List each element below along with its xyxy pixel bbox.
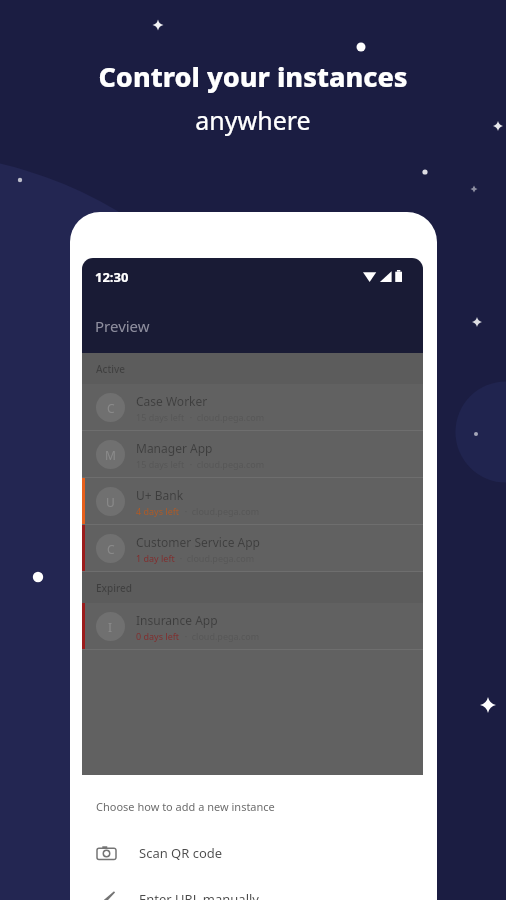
staticText: Manager App: [136, 440, 213, 456]
button[interactable]: C: [82, 525, 423, 572]
staticText: Customer Service App: [136, 534, 260, 550]
staticText: I: [108, 619, 113, 635]
other: Scan QR code: [97, 844, 116, 863]
staticText: U+ Bank: [136, 487, 184, 503]
button[interactable]: I: [82, 603, 423, 650]
staticText: C: [107, 541, 115, 557]
button[interactable]: Scan QR code: [82, 834, 423, 872]
staticText: Preview: [95, 316, 150, 336]
staticText: 12:30: [95, 268, 129, 286]
staticText: Scan QR code: [139, 844, 223, 862]
button[interactable]: M: [82, 431, 423, 478]
staticText: anywhere: [195, 103, 311, 137]
button[interactable]: U: [82, 478, 423, 525]
staticText: 1 day left: [136, 552, 175, 564]
staticText: Control your instances: [98, 58, 408, 95]
button[interactable]: C: [82, 384, 423, 431]
staticText: Case Worker: [136, 393, 208, 409]
staticText: Enter URL manually: [139, 890, 259, 900]
staticText: M: [105, 447, 116, 463]
staticText: Active: [96, 362, 125, 376]
staticText: Choose how to add a new instance: [96, 799, 275, 814]
staticText: 0 days left: [136, 630, 180, 642]
button[interactable]: Enter URL manually: [82, 886, 423, 900]
other: Enter URL manually: [97, 890, 116, 900]
staticText: Insurance App: [136, 612, 218, 628]
staticText: Expired: [96, 581, 132, 595]
staticText: U: [106, 494, 115, 510]
staticText: C: [107, 400, 115, 416]
staticText: 4 days left: [136, 505, 180, 517]
